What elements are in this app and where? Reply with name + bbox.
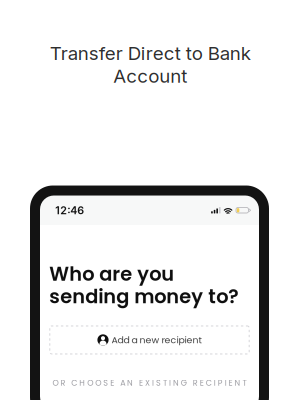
staticText: Who are you sending money to? xyxy=(49,260,238,310)
staticText: OR CHOOSE AN EXISTING RECIPIENT xyxy=(52,377,247,389)
button[interactable]: Add a new recipient xyxy=(49,325,250,354)
staticText: 12:46 xyxy=(55,204,84,217)
staticText: Transfer Direct to Bank Account xyxy=(49,42,250,87)
staticText: Add a new recipient xyxy=(112,333,202,346)
